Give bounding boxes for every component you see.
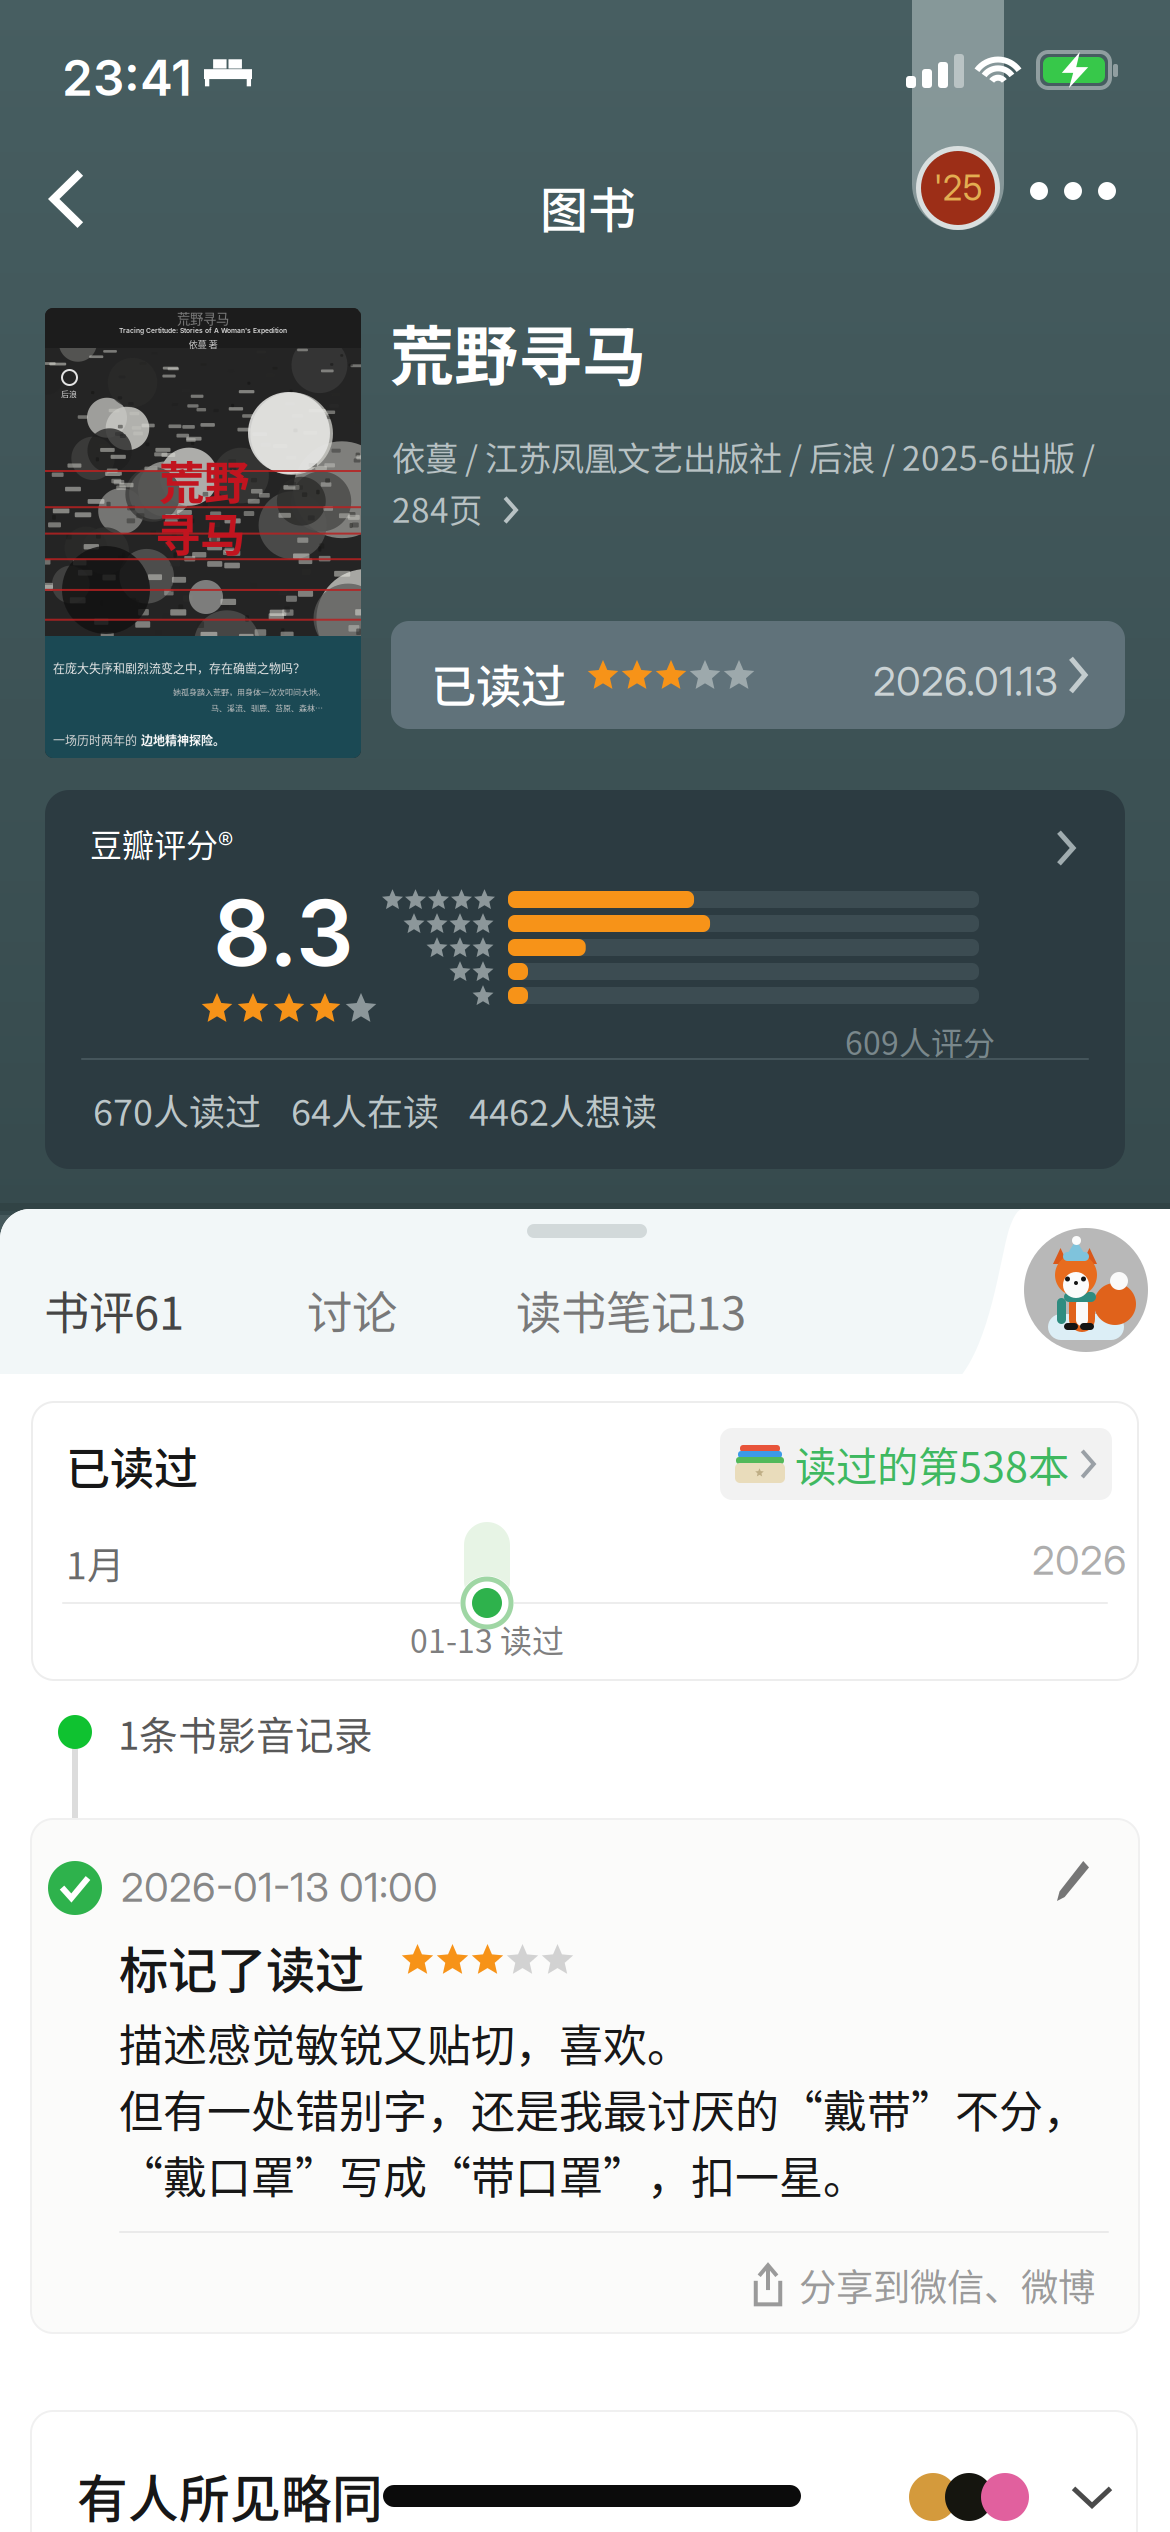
staticText: 边地精神探险。 xyxy=(141,731,225,749)
staticText: 284页 xyxy=(392,484,482,532)
staticText: 描述感觉敏锐又贴切，喜欢。 xyxy=(119,2011,691,2075)
staticText: 已读过 xyxy=(66,1434,198,1498)
button[interactable]: 读过的第538本 xyxy=(720,1428,1112,1500)
button[interactable]: 已读过 xyxy=(32,1402,1138,1680)
button[interactable]: Profile xyxy=(1024,1228,1148,1352)
staticText: 已读过 xyxy=(431,651,566,717)
staticText: 670人读过 xyxy=(93,1084,261,1136)
button[interactable]: 豆瓣评分® xyxy=(45,790,1125,1169)
staticText: 4462人想读 xyxy=(469,1084,657,1136)
button[interactable]: 有人所见略同 xyxy=(31,2411,1137,2532)
staticText: 依蔓 / 江苏凤凰文艺出版社 / 后浪 / 2025-6出版 / xyxy=(392,432,1095,480)
staticText: 后浪 xyxy=(61,388,77,400)
staticText: 荒野 xyxy=(159,447,249,513)
button[interactable]: 已读过 xyxy=(391,621,1125,729)
staticText: 2026-01-13 01:00 xyxy=(121,1863,438,1911)
staticText: 读书笔记13 xyxy=(516,1277,746,1343)
staticText: 有人所见略同 xyxy=(77,2459,383,2532)
staticText: 豆瓣评分® xyxy=(90,820,233,866)
button[interactable]: Book cover xyxy=(45,308,361,758)
button[interactable]: 书评61 xyxy=(30,1269,208,1351)
staticText: 寻马 xyxy=(155,499,245,565)
button[interactable]: 依蔓 / 江苏凤凰文艺出版社 / 后浪 / 2025-6出版 / xyxy=(392,432,1128,540)
staticText: 依蔓 著 xyxy=(188,337,217,351)
staticText: 马、溪流、驯鹿、苔原、森林… xyxy=(211,702,323,714)
staticText: 1条书影音记录 xyxy=(118,1705,373,1761)
staticText: 一场历时两年的 xyxy=(53,731,137,749)
staticText: 23:41 xyxy=(62,48,192,108)
staticText: 8.3 xyxy=(213,878,354,988)
staticText: Tracing Certitude: Stories of A Woman's … xyxy=(119,326,287,335)
staticText: 64人在读 xyxy=(291,1084,439,1136)
staticText: '25 xyxy=(933,167,982,209)
button[interactable]: 讨论 xyxy=(293,1269,415,1351)
button[interactable]: 读书笔记13 xyxy=(502,1269,770,1351)
staticText: 2026.01.13 xyxy=(873,657,1058,705)
button[interactable]: 2026-01-13 01:00 xyxy=(31,1819,1139,2333)
staticText: 但有一处错别字，还是我最讨厌的“戴带”不分， xyxy=(119,2077,1087,2141)
staticText: 她孤身踏入荒野，用身体一次次叩问大地。 xyxy=(173,686,325,698)
staticText: 在庞大失序和剧烈流变之中，存在确凿之物吗？ xyxy=(53,659,305,677)
button[interactable]: More xyxy=(1000,140,1146,242)
staticText: 讨论 xyxy=(307,1277,397,1343)
staticText: 荒野寻马 xyxy=(390,305,646,398)
button[interactable]: Back xyxy=(14,138,120,260)
staticText: 书评61 xyxy=(44,1277,184,1343)
button[interactable]: 分享到微信、微博 xyxy=(747,2243,1099,2327)
staticText: 1月 xyxy=(66,1536,124,1590)
staticText: 图书 xyxy=(540,172,636,241)
staticText: 01-13 读过 xyxy=(410,1616,564,1662)
staticText: 609人评分 xyxy=(845,1018,995,1064)
staticText: 标记了读过 xyxy=(119,1931,364,2002)
staticText: 读过的第538本 xyxy=(795,1434,1069,1494)
staticText: 分享到微信、微博 xyxy=(799,2258,1095,2312)
staticText: 2026 xyxy=(1032,1536,1127,1584)
staticText: “戴口罩”写成“带口罩”，扣一星。 xyxy=(119,2143,867,2207)
button[interactable]: Edit xyxy=(1041,1845,1105,1917)
staticText: 荒野寻马 xyxy=(177,308,229,328)
